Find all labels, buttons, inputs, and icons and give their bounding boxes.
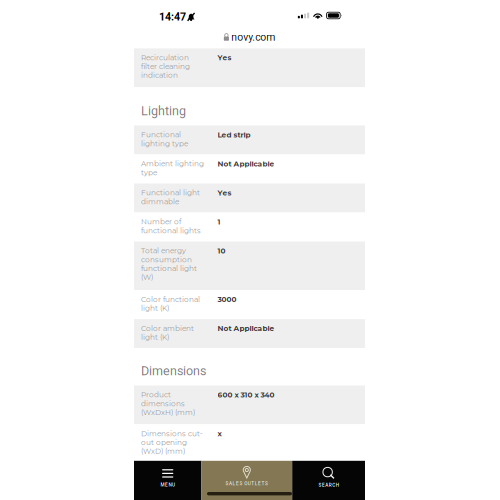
button[interactable]: MENU <box>134 461 201 500</box>
staticText: 10 <box>217 246 225 255</box>
staticText: Functional lighting type <box>141 130 188 148</box>
staticText: SALES OUTLETS <box>226 481 268 486</box>
staticText: Not Applicable <box>217 159 274 168</box>
staticText: Functional light dimmable <box>141 188 200 206</box>
staticText: Led strip <box>217 130 250 139</box>
staticText: Dimensions <box>141 363 206 378</box>
staticText: Recirculation filter cleaning indication <box>141 53 190 80</box>
staticText: Number of functional lights <box>141 217 201 235</box>
staticText: Yes <box>217 188 231 197</box>
staticText: novy.com <box>231 31 275 43</box>
staticText: 1 <box>217 217 220 226</box>
button[interactable]: novy.com <box>134 26 365 48</box>
button[interactable]: SALES OUTLETS <box>201 461 292 500</box>
staticText: SEARCH <box>318 482 339 488</box>
staticText: Color functional light (K) <box>141 295 200 312</box>
staticText: Product dimensions (WxDxH) (mm) <box>141 390 195 417</box>
staticText: Total energy consumption functional ligh… <box>141 246 197 282</box>
staticText: 14:47 <box>159 11 186 23</box>
staticText: Lighting <box>141 103 186 118</box>
staticText: MENU <box>160 482 175 488</box>
staticText: 3000 <box>217 295 236 304</box>
staticText: Not Applicable <box>217 324 274 333</box>
staticText: Ambient lighting type <box>141 159 204 177</box>
staticText: Dimensions cut- out opening (WxD) (mm) <box>141 429 203 455</box>
staticText: Color ambient light (K) <box>141 324 194 341</box>
staticText: x <box>217 429 221 438</box>
staticText: Yes <box>217 53 231 62</box>
button[interactable]: SEARCH <box>292 461 365 500</box>
staticText: 600 x 310 x 340 <box>217 390 274 399</box>
